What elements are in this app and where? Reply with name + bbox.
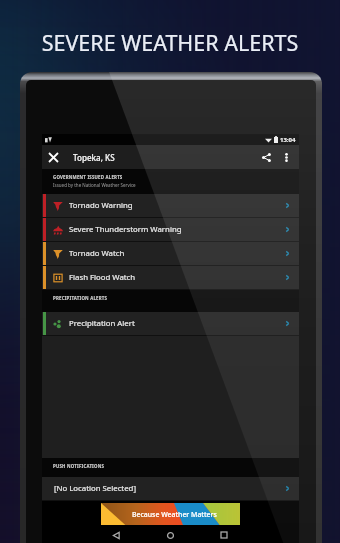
staticText: PUSH NOTIFICATIONS (53, 463, 105, 469)
staticText: Topeka, KS (73, 152, 115, 163)
button[interactable]: Because Weather Matters (101, 503, 240, 525)
button[interactable]: Tornado Watch (42, 242, 299, 266)
button[interactable]: More options (277, 148, 295, 166)
staticText: GOVERNMENT ISSUED ALERTS (53, 174, 123, 180)
button[interactable]: Flash Flood Watch (42, 266, 299, 290)
button[interactable]: Home (162, 527, 178, 543)
staticText: Tornado Warning (69, 200, 133, 211)
button[interactable]: Recent apps (216, 527, 232, 543)
button[interactable]: Close (44, 148, 62, 166)
staticText: Because Weather Matters (132, 510, 217, 519)
button[interactable]: Precipitation Alert (42, 312, 299, 336)
button[interactable]: [No Location Selected] (42, 477, 299, 501)
staticText: [No Location Selected] (54, 483, 136, 494)
staticText: SEVERE WEATHER ALERTS (0, 28, 340, 57)
staticText: Flash Flood Watch (69, 272, 136, 283)
button[interactable]: Tornado Warning (42, 194, 299, 218)
staticText: Severe Thunderstorm Warning (69, 224, 182, 235)
button[interactable]: Share (257, 148, 275, 166)
button[interactable]: Severe Thunderstorm Warning (42, 218, 299, 242)
staticText: Issued by the National Weather Service (53, 182, 136, 188)
staticText: Tornado Watch (69, 248, 125, 259)
staticText: 13:04 (280, 136, 296, 144)
staticText: Precipitation Alert (69, 318, 135, 329)
button[interactable]: Back (108, 527, 124, 543)
staticText: PRECIPITATION ALERTS (53, 295, 108, 301)
